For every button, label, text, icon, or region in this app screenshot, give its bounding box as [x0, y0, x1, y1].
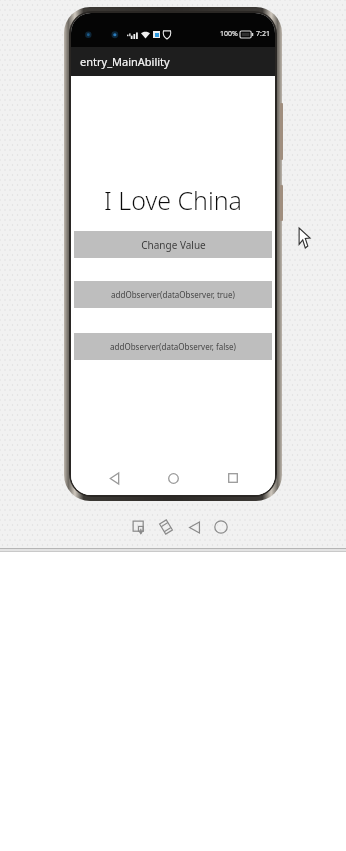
button[interactable]: Home: [210, 516, 232, 538]
staticText: I Love China: [104, 183, 242, 217]
button[interactable]: Screenshot: [128, 516, 150, 538]
staticText: entry_MainAbility: [80, 54, 170, 69]
button[interactable]: Home: [156, 461, 190, 495]
button[interactable]: addObserver(dataObserver, false): [74, 333, 272, 360]
staticText: 7:21: [256, 29, 270, 39]
button[interactable]: addObserver(dataObserver, true): [74, 281, 272, 308]
button[interactable]: Change Value: [74, 231, 272, 258]
button[interactable]: Recent apps: [216, 461, 250, 495]
staticText: 100%: [220, 29, 238, 39]
button[interactable]: Back: [97, 461, 131, 495]
staticText: addObserver(dataObserver, true): [111, 289, 235, 300]
button[interactable]: Rotate: [155, 516, 177, 538]
staticText: addObserver(dataObserver, false): [110, 341, 236, 352]
staticText: Change Value: [141, 238, 206, 252]
button[interactable]: Back: [183, 516, 205, 538]
